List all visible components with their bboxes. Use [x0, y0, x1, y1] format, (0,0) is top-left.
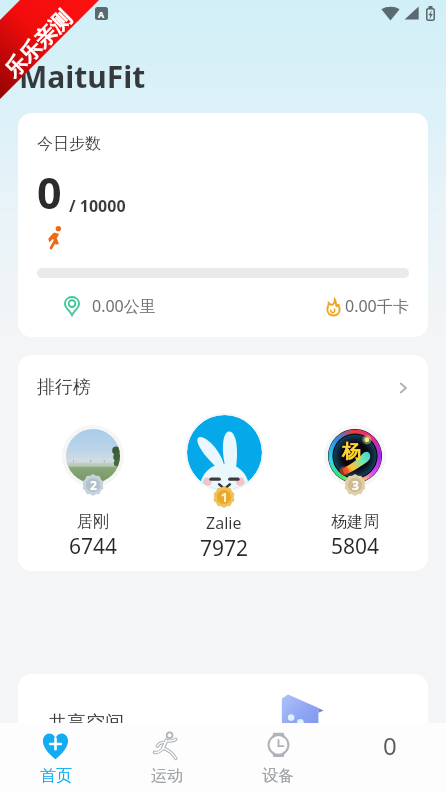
staticText: 运动 — [151, 766, 183, 786]
button[interactable]: Device — [222, 723, 334, 792]
staticText: A — [98, 8, 105, 20]
staticText: / 10000 — [69, 195, 126, 217]
staticText: 0.00千卡 — [345, 295, 409, 317]
staticText: 共享空间 — [48, 711, 124, 735]
staticText: MaituFit — [19, 56, 146, 97]
staticText: 5804 — [331, 532, 380, 561]
button[interactable]: Profile — [334, 723, 446, 792]
staticText: 乐乐亲测 — [0, 5, 77, 83]
staticText: 2 — [90, 477, 97, 493]
staticText: 今日步数 — [37, 134, 101, 154]
staticText: 7972 — [200, 534, 249, 563]
staticText: 0 — [37, 163, 62, 222]
staticText: 排行榜 — [37, 376, 91, 399]
staticText: 1 — [221, 489, 228, 505]
button[interactable]: 共享空间 — [18, 674, 428, 792]
button[interactable]: 排行榜 — [18, 355, 428, 571]
staticText: 0.00公里 — [92, 295, 156, 317]
staticText: 3 — [352, 477, 359, 493]
button[interactable]: 今日步数 — [18, 113, 428, 337]
button[interactable]: Home — [0, 723, 111, 792]
staticText: Zalie — [206, 512, 242, 534]
staticText: 杨建周 — [331, 512, 379, 532]
staticText: 居刚 — [77, 512, 109, 532]
staticText: 0 — [383, 729, 397, 762]
button[interactable]: Exercise — [111, 723, 222, 792]
staticText: 杨 — [342, 440, 361, 464]
staticText: 6744 — [69, 532, 118, 561]
staticText: 首页 — [40, 766, 72, 786]
staticText: 设备 — [262, 766, 294, 786]
other: More rankings — [395, 380, 411, 396]
